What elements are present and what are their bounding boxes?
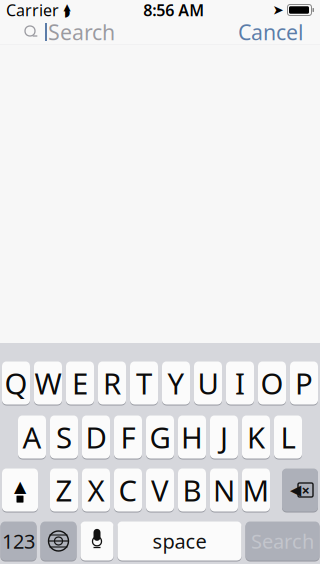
staticText: I <box>235 363 245 402</box>
staticText: Cancel <box>238 18 304 46</box>
staticText: T <box>136 363 152 402</box>
staticText: ▲ <box>63 2 70 12</box>
staticText: J <box>220 417 228 456</box>
button[interactable]: F <box>114 415 142 459</box>
button[interactable]: J <box>210 415 238 459</box>
staticText: Carrier <box>6 0 59 21</box>
button[interactable]: Z <box>50 468 78 512</box>
button[interactable]: P <box>290 361 318 405</box>
button[interactable]: N <box>210 468 238 512</box>
staticText: X <box>87 470 104 509</box>
staticText: space <box>152 528 206 554</box>
button[interactable]: Cancel <box>226 12 316 52</box>
staticText: D <box>85 417 106 456</box>
button[interactable]: Search <box>245 521 319 561</box>
button[interactable]: Dictate <box>80 521 113 561</box>
staticText: Search <box>251 528 314 554</box>
button[interactable]: L <box>274 415 302 459</box>
staticText: P <box>295 363 313 402</box>
button[interactable]: Shift <box>2 468 38 512</box>
button[interactable]: E <box>66 361 94 405</box>
staticText: 123 <box>2 528 35 554</box>
button[interactable]: U <box>194 361 222 405</box>
button[interactable]: X <box>82 468 110 512</box>
button[interactable]: R <box>98 361 126 405</box>
button[interactable]: K <box>242 415 270 459</box>
button[interactable]: V <box>146 468 174 512</box>
button[interactable]: T <box>130 361 158 405</box>
staticText: Z <box>55 470 72 509</box>
staticText: G <box>149 417 170 456</box>
staticText: E <box>72 363 88 402</box>
button[interactable]: Next keyboard <box>40 521 76 561</box>
staticText: R <box>103 363 121 402</box>
button[interactable]: G <box>146 415 174 459</box>
button[interactable]: A <box>18 415 46 459</box>
staticText: V <box>151 470 169 509</box>
staticText: Q <box>4 363 27 402</box>
staticText: ◗ <box>64 5 70 19</box>
staticText: × <box>301 480 309 500</box>
button[interactable]: I <box>226 361 254 405</box>
staticText: ▲ <box>14 477 26 496</box>
button[interactable]: B <box>178 468 206 512</box>
button[interactable]: Numbers <box>0 521 36 561</box>
button[interactable]: Q <box>2 361 30 405</box>
button[interactable]: H <box>178 415 206 459</box>
staticText: F <box>120 417 135 456</box>
button[interactable]: space <box>117 521 241 561</box>
staticText: C <box>118 470 137 509</box>
button[interactable]: Delete <box>282 468 318 512</box>
button[interactable]: S <box>50 415 78 459</box>
staticText: U <box>197 363 218 402</box>
staticText: B <box>182 470 201 509</box>
staticText: ➤ <box>272 2 283 17</box>
staticText: L <box>280 417 295 456</box>
staticText: S <box>56 417 72 456</box>
button[interactable]: Y <box>162 361 190 405</box>
button[interactable]: O <box>258 361 286 405</box>
staticText: K <box>247 417 265 456</box>
staticText: Search <box>48 18 115 46</box>
staticText: 8:56 AM <box>143 0 204 21</box>
staticText: M <box>242 470 269 509</box>
staticText: O <box>260 363 283 402</box>
staticText: N <box>213 470 235 509</box>
staticText: Y <box>167 363 184 402</box>
button[interactable]: D <box>82 415 110 459</box>
staticText: H <box>181 417 203 456</box>
button[interactable]: C <box>114 468 142 512</box>
staticText: W <box>34 363 61 402</box>
staticText: A <box>22 417 41 456</box>
staticText: ◀ <box>290 482 301 498</box>
button[interactable]: W <box>34 361 62 405</box>
button[interactable]: M <box>242 468 270 512</box>
